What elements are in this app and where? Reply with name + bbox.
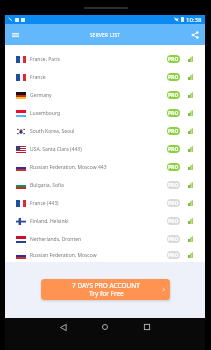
staticText: France bbox=[30, 74, 46, 81]
staticText: Try for Free bbox=[89, 289, 124, 298]
staticText: PRO bbox=[168, 56, 179, 63]
button[interactable]: Germany bbox=[5, 86, 205, 104]
staticText: France, Paris bbox=[30, 56, 60, 63]
staticText: PRO bbox=[168, 110, 179, 117]
button[interactable]: Russian Federation, Moscow 443 bbox=[5, 158, 205, 176]
button[interactable]: Bulgaria, Sofia bbox=[5, 176, 205, 194]
staticText: PRO bbox=[168, 252, 179, 259]
staticText: Russian Federation, Moscow 443 bbox=[30, 164, 107, 171]
button[interactable]: Open navigation menu bbox=[5, 24, 26, 45]
staticText: USA, Santa Clara (443) bbox=[30, 146, 82, 153]
button[interactable]: France bbox=[5, 68, 205, 86]
staticText: PRO bbox=[168, 218, 179, 225]
button[interactable]: USA, Santa Clara (443) bbox=[5, 140, 205, 158]
staticText: 7 DAYS PRO ACCOUNT bbox=[72, 281, 140, 290]
staticText: PRO bbox=[168, 164, 179, 171]
staticText: Russian Federation, Moscow bbox=[30, 252, 97, 259]
staticText: 10:38 bbox=[186, 16, 202, 24]
staticText: Germany bbox=[30, 92, 52, 99]
staticText: PRO bbox=[168, 128, 179, 135]
button[interactable]: Finland, Helsinki bbox=[5, 212, 205, 230]
staticText: Luxembourg bbox=[30, 110, 61, 117]
staticText: Bulgaria, Sofia bbox=[30, 182, 64, 189]
button[interactable]: Share bbox=[184, 24, 205, 45]
button[interactable]: Back bbox=[54, 318, 72, 336]
button[interactable]: 7 DAYS PRO ACCOUNT bbox=[41, 279, 170, 300]
staticText: PRO bbox=[168, 236, 179, 243]
button[interactable]: Russian Federation, Moscow bbox=[5, 248, 205, 262]
staticText: PRO bbox=[168, 92, 179, 99]
staticText: SERVER LIST bbox=[90, 32, 121, 38]
button[interactable]: Recent apps bbox=[138, 318, 156, 336]
staticText: France (443) bbox=[30, 200, 59, 207]
button[interactable]: Home bbox=[96, 318, 114, 336]
staticText: South Korea, Seoul bbox=[30, 128, 75, 135]
button[interactable]: France (443) bbox=[5, 194, 205, 212]
button[interactable]: South Korea, Seoul bbox=[5, 122, 205, 140]
staticText: PRO bbox=[168, 200, 179, 207]
staticText: Finland, Helsinki bbox=[30, 218, 69, 225]
staticText: PRO bbox=[168, 74, 179, 81]
staticText: PRO bbox=[168, 146, 179, 153]
staticText: Netherlands, Dronten bbox=[30, 236, 82, 243]
button[interactable]: Luxembourg bbox=[5, 104, 205, 122]
staticText: PRO bbox=[168, 182, 179, 189]
button[interactable]: France, Paris bbox=[5, 50, 205, 68]
button[interactable]: Netherlands, Dronten bbox=[5, 230, 205, 248]
